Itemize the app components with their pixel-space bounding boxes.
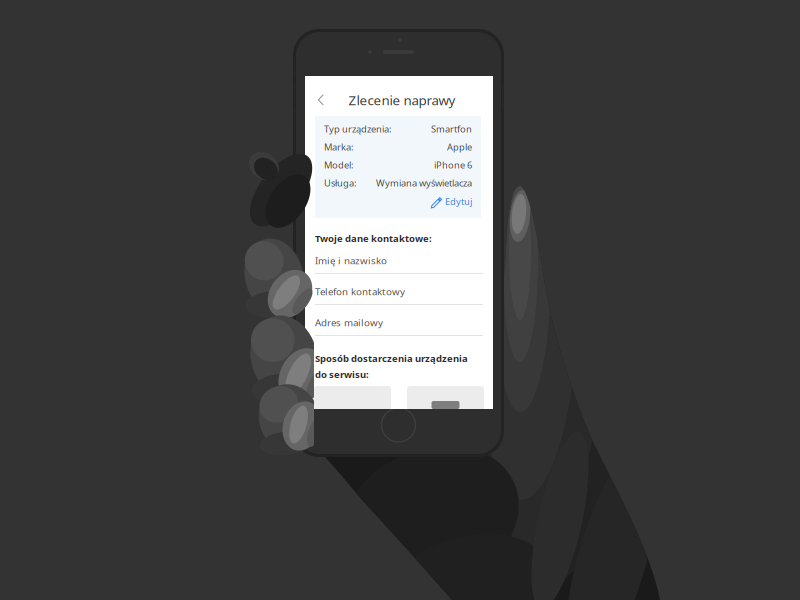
staticText: Adres mailowy — [315, 316, 383, 329]
staticText: Typ urządzenia: — [324, 123, 392, 135]
button[interactable]: Telefon kontaktowy — [315, 279, 483, 305]
button[interactable]: Wysyłka kurierem — [407, 386, 484, 426]
button[interactable]: Adres mailowy — [315, 310, 483, 336]
staticText: Telefon kontaktowy — [315, 285, 405, 298]
staticText: Model: — [324, 159, 354, 171]
staticText: Twoje dane kontaktowe: — [315, 232, 432, 245]
staticText: Sposób dostarczenia urządzenia — [315, 352, 468, 365]
staticText: Marka: — [324, 141, 354, 153]
button[interactable]: Back — [310, 87, 332, 113]
button[interactable]: Edytuj — [324, 195, 472, 208]
staticText: Imię i nazwisko — [315, 254, 387, 267]
staticText: iPhone 6 — [434, 159, 472, 171]
button[interactable]: Imię i nazwisko — [315, 248, 483, 274]
staticText: Edytuj — [445, 195, 472, 208]
staticText: Wymiana wyświetlacza — [376, 177, 472, 189]
staticText: Usługa: — [324, 177, 357, 189]
button[interactable]: Dostarczenie osobiste — [314, 386, 391, 426]
staticText: do serwisu: — [315, 368, 369, 381]
staticText: Zlecenie naprawy — [348, 91, 455, 109]
staticText: Smartfon — [431, 123, 472, 135]
staticText: Apple — [447, 141, 472, 153]
